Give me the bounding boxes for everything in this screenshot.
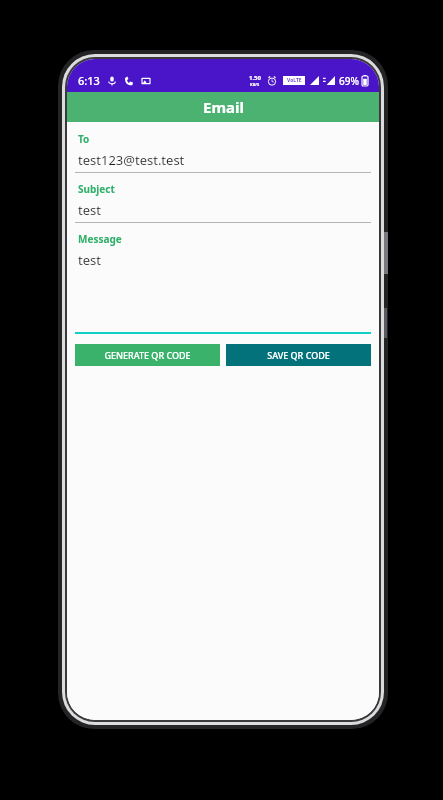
staticText: Message bbox=[78, 232, 122, 246]
staticText: test123@test.test bbox=[78, 151, 185, 169]
staticText: Email bbox=[203, 97, 244, 117]
staticText: SAVE QR CODE bbox=[267, 349, 330, 361]
staticText: To bbox=[78, 132, 90, 146]
staticText: 6:13 bbox=[78, 73, 100, 88]
button[interactable]: test bbox=[75, 201, 371, 223]
staticText: 69% bbox=[339, 74, 359, 88]
button[interactable]: test bbox=[75, 251, 371, 334]
staticText: VoLTE bbox=[287, 77, 302, 84]
staticText: 1.50 bbox=[249, 74, 261, 82]
staticText: Subject bbox=[78, 182, 115, 196]
staticText: test bbox=[78, 251, 101, 269]
button[interactable]: SAVE QR CODE bbox=[226, 344, 371, 366]
staticText: GENERATE QR CODE bbox=[104, 349, 191, 361]
staticText: test bbox=[78, 201, 101, 219]
button[interactable]: GENERATE QR CODE bbox=[75, 344, 220, 366]
staticText: KB/S bbox=[250, 82, 260, 87]
button[interactable]: test123@test.test bbox=[75, 151, 371, 173]
